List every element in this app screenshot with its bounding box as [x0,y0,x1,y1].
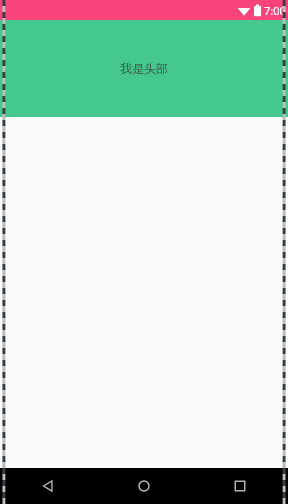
button[interactable]: Home [96,468,192,504]
staticText: 我是头部 [120,61,168,76]
button[interactable]: Recent apps [192,468,288,504]
button[interactable]: 我是头部 [0,20,288,117]
button[interactable]: Back [0,468,96,504]
staticText: 7:00 [264,3,286,18]
